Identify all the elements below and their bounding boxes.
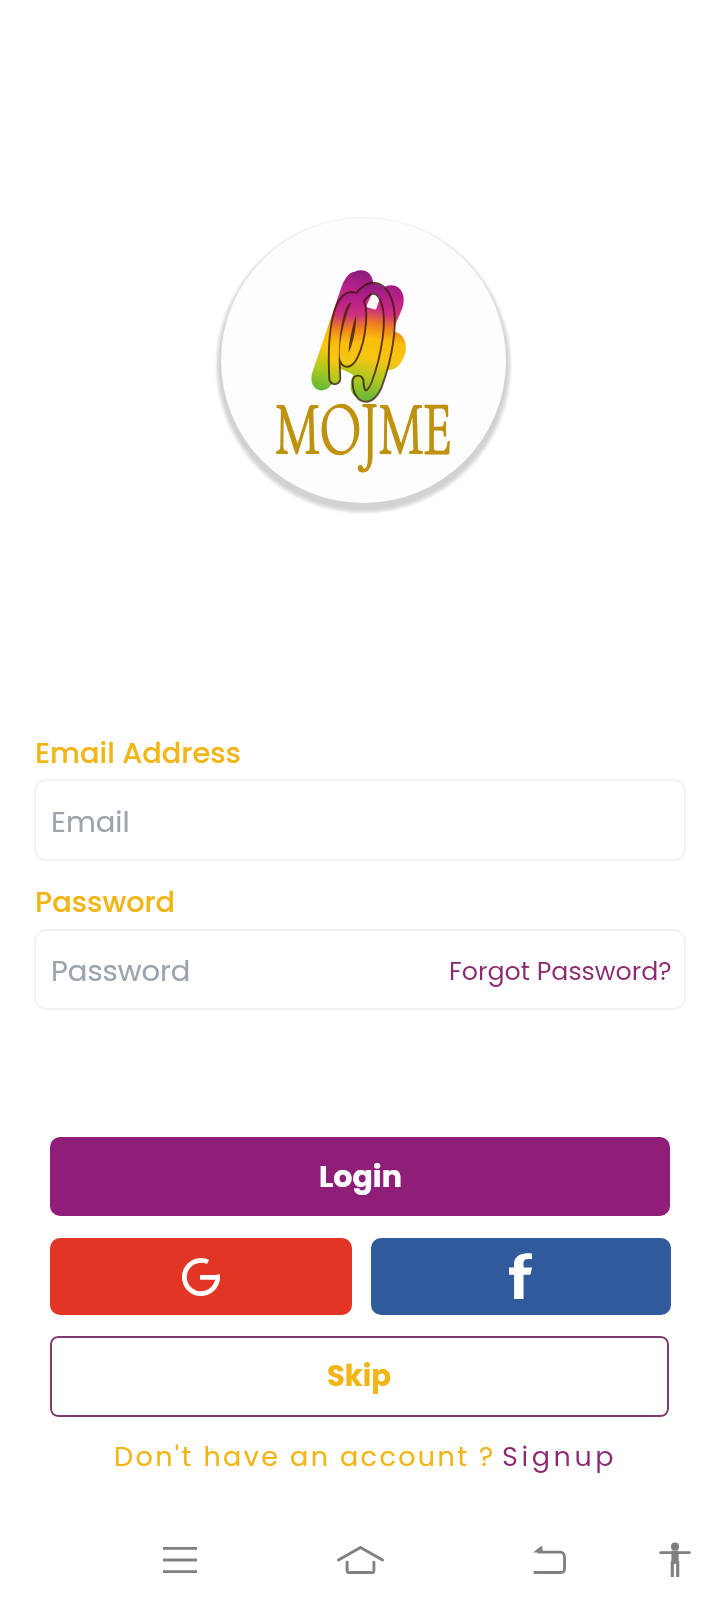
button[interactable]: Skip: [50, 1336, 669, 1417]
button[interactable]: Accessibility: [635, 1520, 715, 1600]
staticText: Email: [51, 802, 130, 843]
button[interactable]: Home: [320, 1520, 400, 1600]
staticText: Don't have an account ?: [114, 1438, 496, 1476]
staticText: Password: [35, 882, 176, 922]
button[interactable]: Signup: [502, 1438, 618, 1476]
staticText: Login: [319, 1156, 402, 1198]
button[interactable]: Forgot Password?: [449, 952, 686, 987]
staticText: Skip: [327, 1356, 392, 1397]
button[interactable]: Email: [34, 779, 686, 861]
button[interactable]: Password: [51, 951, 191, 992]
staticText: MOJME: [275, 384, 452, 476]
button[interactable]: Back: [509, 1520, 589, 1600]
button[interactable]: Sign in with Google: [50, 1238, 352, 1315]
staticText: Email Address: [35, 733, 241, 773]
button[interactable]: Login: [50, 1137, 670, 1216]
button[interactable]: Recent apps: [140, 1520, 220, 1600]
button[interactable]: Sign in with Facebook: [371, 1238, 671, 1315]
